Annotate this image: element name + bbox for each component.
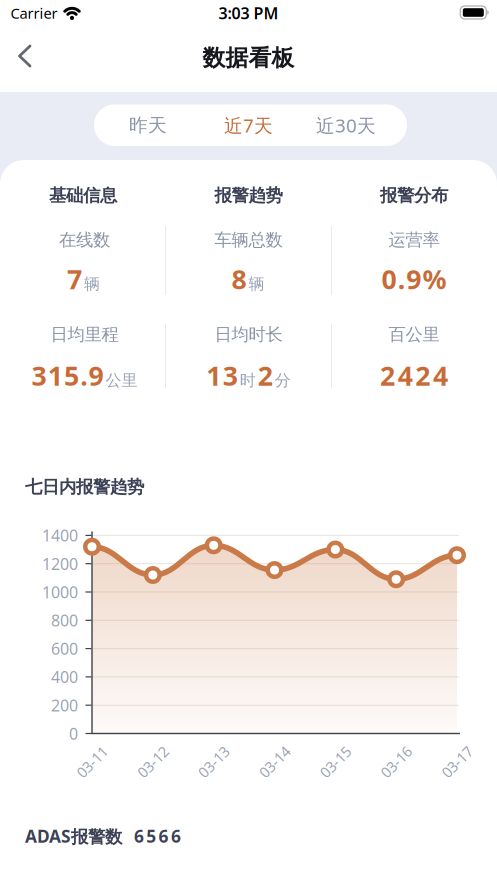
staticText: 时 <box>240 371 256 390</box>
staticText: 03-16 <box>378 752 415 772</box>
staticText: 运营率 <box>388 229 439 251</box>
staticText: 03-11 <box>73 752 110 772</box>
staticText: 03-14 <box>256 752 293 772</box>
staticText: 800 <box>51 610 78 631</box>
staticText: 6 <box>134 824 144 847</box>
staticText: 8 <box>231 261 246 297</box>
staticText: 9 <box>89 358 104 393</box>
staticText: 2 <box>380 358 395 393</box>
staticText: . <box>80 358 87 393</box>
staticText: 3 <box>223 358 238 393</box>
staticText: 报警分布 <box>380 185 448 206</box>
staticText: 03-13 <box>195 752 232 772</box>
staticText: 近7天 <box>224 113 273 138</box>
staticText: 5 <box>146 824 156 847</box>
button[interactable]: 近30天 <box>296 104 396 146</box>
staticText: 辆 <box>84 274 100 294</box>
button[interactable]: 昨天 <box>98 104 198 146</box>
staticText: 200 <box>51 695 78 716</box>
button[interactable]: Back <box>3 34 47 77</box>
staticText: 5 <box>64 358 79 393</box>
staticText: 1 <box>48 358 63 393</box>
staticText: 公里 <box>106 371 138 390</box>
staticText: 1200 <box>42 553 78 574</box>
staticText: 3:03 PM <box>218 2 278 24</box>
staticText: 1000 <box>42 581 78 603</box>
staticText: 辆 <box>248 274 264 294</box>
staticText: Carrier <box>10 3 57 23</box>
staticText: 七日内报警趋势 <box>25 476 144 498</box>
staticText: . <box>398 261 405 297</box>
staticText: 近30天 <box>316 113 376 138</box>
staticText: 7 <box>67 261 82 297</box>
staticText: ADAS报警数 <box>25 824 122 847</box>
staticText: 分 <box>275 371 291 390</box>
staticText: 日均里程 <box>50 324 118 345</box>
staticText: 百公里 <box>388 324 439 345</box>
staticText: 03-17 <box>438 752 475 772</box>
button[interactable]: 报警趋势 <box>188 179 308 211</box>
staticText: 0 <box>69 723 78 744</box>
staticText: 3 <box>31 358 46 393</box>
staticText: 0 <box>382 261 397 297</box>
staticText: 在线数 <box>59 229 110 251</box>
staticText: 6 <box>159 824 169 847</box>
staticText: 4 <box>433 358 448 393</box>
staticText: 报警趋势 <box>214 185 282 206</box>
staticText: 03-12 <box>134 752 171 772</box>
staticText: 日均时长 <box>214 324 282 345</box>
staticText: 1 <box>206 358 221 393</box>
button[interactable]: 近7天 <box>198 104 298 146</box>
staticText: 数据看板 <box>202 44 294 72</box>
staticText: 基础信息 <box>49 185 117 206</box>
staticText: 6 <box>171 824 181 847</box>
button[interactable]: 报警分布 <box>354 179 474 211</box>
button[interactable]: 基础信息 <box>23 179 143 211</box>
staticText: % <box>422 261 446 297</box>
staticText: 9 <box>406 261 421 297</box>
staticText: 车辆总数 <box>214 229 282 251</box>
staticText: 2 <box>258 358 273 393</box>
staticText: 1400 <box>42 525 78 546</box>
staticText: 昨天 <box>129 114 167 137</box>
staticText: 4 <box>398 358 413 393</box>
staticText: 400 <box>51 666 78 687</box>
staticText: 600 <box>51 638 78 659</box>
staticText: 2 <box>415 358 430 393</box>
staticText: 03-15 <box>317 752 354 772</box>
